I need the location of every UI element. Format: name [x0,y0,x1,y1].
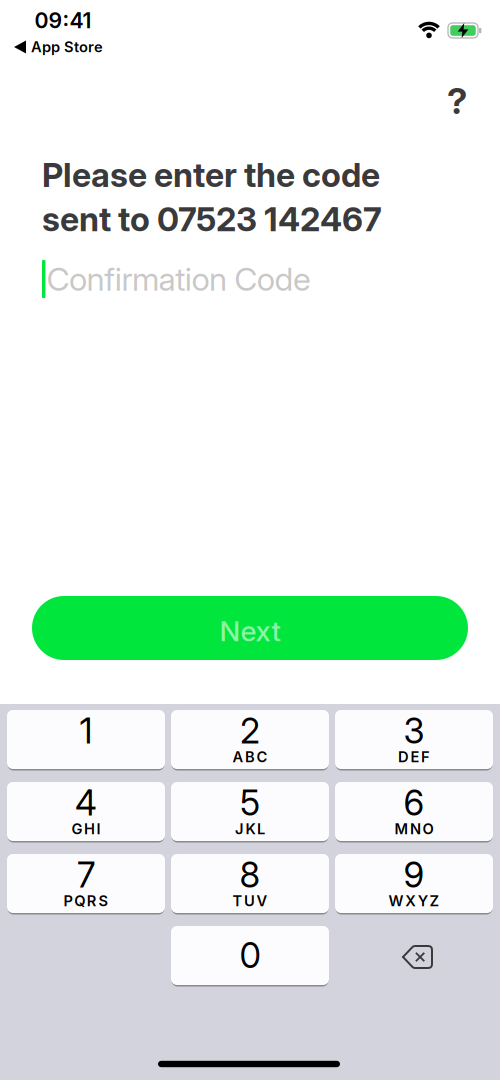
button[interactable]: App Store [14,37,194,57]
staticText: 0 [239,935,260,976]
staticText: 6 [403,783,424,823]
button[interactable]: Confirmation Code [42,257,482,301]
button[interactable]: 7 [7,853,165,914]
button[interactable]: Delete [387,937,447,977]
staticText: 5 [240,783,260,823]
staticText: Please enter the code sent to 07523 1424… [42,155,382,239]
button[interactable]: 6 [335,781,493,842]
staticText: 3 [403,711,424,751]
staticText: Confirmation Code [46,260,311,298]
button[interactable]: 1 [7,709,165,770]
staticText: WXYZ [389,892,439,910]
staticText: GHI [71,820,101,838]
staticText: DEF [398,748,430,766]
staticText: 09:41 [34,8,91,33]
staticText: MNO [394,820,434,838]
staticText: 8 [239,855,260,895]
staticText: 7 [77,855,95,895]
button[interactable]: 4 [7,781,165,842]
button[interactable]: Next [32,596,468,660]
staticText: TUV [232,892,268,910]
button[interactable]: 0 [171,925,329,986]
button[interactable]: 3 [335,709,493,770]
button[interactable]: 2 [171,709,329,770]
staticText: JKL [235,820,265,838]
staticText: 4 [75,783,97,823]
staticText: 1 [79,711,92,751]
staticText: PQRS [64,892,108,910]
button[interactable]: 8 [171,853,329,914]
staticText: App Store [31,38,103,56]
staticText: ABC [232,748,268,766]
staticText: 2 [240,711,260,751]
button[interactable]: 5 [171,781,329,842]
button[interactable]: Help [435,79,479,123]
staticText: ? [447,80,467,122]
button[interactable]: 9 [335,853,493,914]
staticText: 9 [403,855,424,895]
staticText: Next [219,614,280,647]
